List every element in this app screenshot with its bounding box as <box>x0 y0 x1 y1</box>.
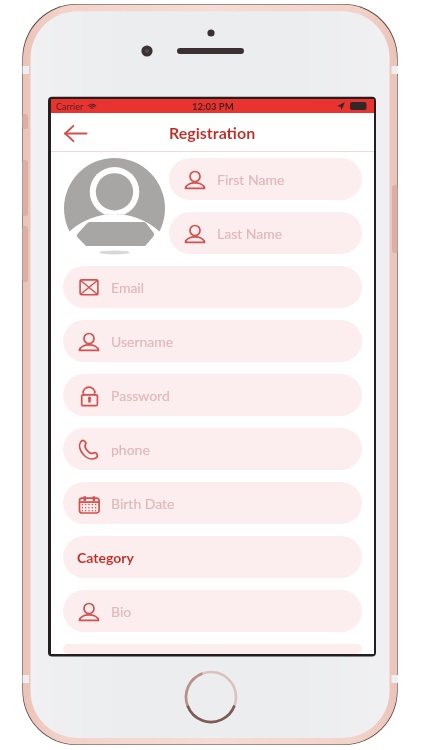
staticText: phone <box>111 441 150 458</box>
staticText: Birth Date <box>111 495 175 512</box>
button[interactable]: Last Name <box>169 212 362 254</box>
staticText: First Name <box>217 171 285 188</box>
button[interactable]: Category <box>63 536 362 578</box>
staticText: Bio <box>111 603 132 620</box>
button[interactable]: phone <box>63 428 362 470</box>
button[interactable]: Email <box>63 266 362 308</box>
staticText: Category <box>77 549 134 566</box>
staticText: Password <box>111 387 170 404</box>
staticText: Last Name <box>217 225 283 242</box>
button[interactable]: First Name <box>169 158 362 200</box>
button[interactable]: Back <box>56 114 94 152</box>
button[interactable]: Password <box>63 374 362 416</box>
button[interactable]: Username <box>63 320 362 362</box>
staticText: Carrier <box>56 101 84 112</box>
staticText: Username <box>111 333 174 350</box>
staticText: 12:03 PM <box>192 101 234 112</box>
staticText: Email <box>111 279 145 296</box>
button[interactable]: Bio <box>63 590 362 632</box>
staticText: Registration <box>169 123 256 142</box>
button[interactable]: Birth Date <box>63 482 362 524</box>
